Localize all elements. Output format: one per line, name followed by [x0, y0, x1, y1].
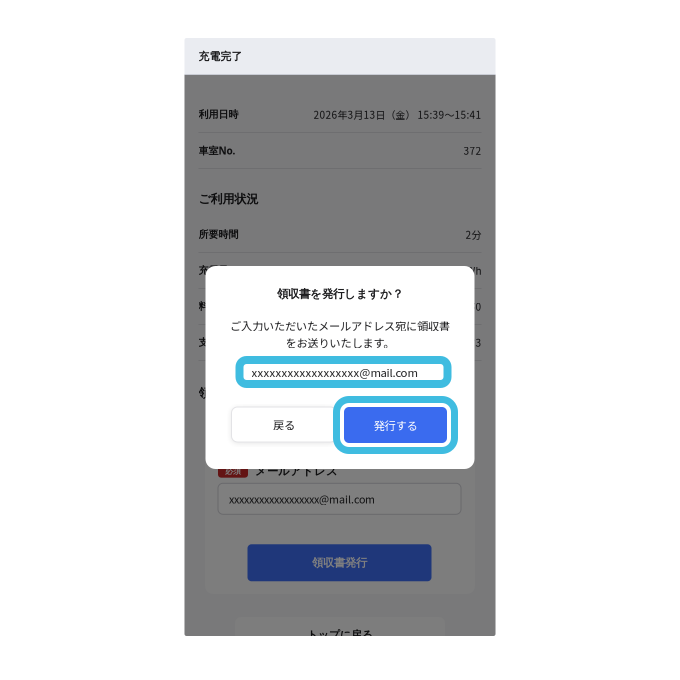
button[interactable]: 発行する [333, 396, 458, 454]
staticText: クレジットカード ****3 [373, 335, 481, 350]
button[interactable]: 領収書発行 [247, 544, 431, 581]
staticText: ご利用状況 [198, 191, 258, 206]
staticText: 領収書発行 [312, 556, 367, 570]
staticText: 必須 [225, 466, 241, 476]
staticText: 所要時間 [198, 228, 238, 241]
staticText: xxxxxxxxxxxxxxxxxx@mail.com [229, 491, 375, 506]
staticText: をお送りいたします。 [285, 334, 394, 351]
staticText: 戻る [273, 416, 295, 433]
button[interactable]: トップに戻る [235, 617, 445, 653]
staticText: ¥0 [469, 299, 481, 314]
staticText: 充電完了 [198, 50, 242, 63]
staticText: 支払方法 [198, 336, 238, 349]
staticText: 372 [463, 143, 481, 158]
staticText: 車室No. [198, 144, 235, 157]
staticText: 2026年3月13日（金） 15:39〜15:41 [313, 107, 481, 122]
staticText: 利用日時 [198, 108, 238, 121]
staticText: メールアドレス [255, 464, 338, 478]
staticText: 充電量 [198, 264, 228, 277]
staticText: xxxxxxxxxxxxxxxxxx@mail.com [251, 364, 417, 380]
staticText: 料金 [198, 300, 218, 313]
staticText: トップに戻る [307, 628, 373, 642]
staticText: 領収書を発行しますか？ [277, 287, 403, 301]
staticText: ご入力いただいたメールアドレス宛に領収書 [230, 317, 450, 334]
staticText: 発行する [373, 417, 417, 433]
button[interactable]: 戻る [231, 407, 336, 442]
staticText: 領収書 [198, 385, 234, 400]
staticText: 0.01kWh [439, 263, 481, 278]
staticText: 2分 [465, 227, 481, 242]
